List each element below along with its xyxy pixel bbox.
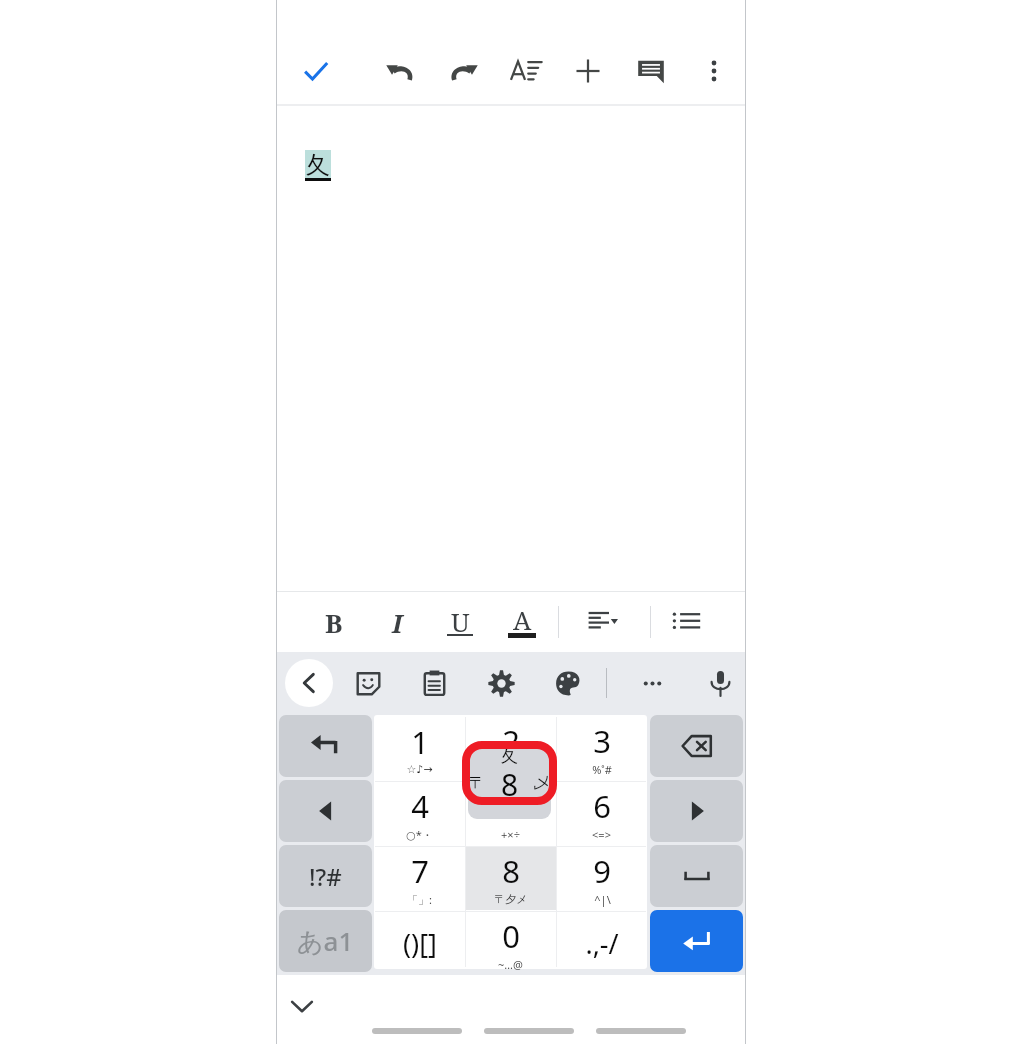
staticText: +×÷ <box>501 827 520 842</box>
staticText: 8 <box>502 850 520 892</box>
staticText: 8 <box>501 764 519 802</box>
button[interactable]: Cursor left <box>279 780 372 842</box>
button[interactable]: 9 <box>556 846 647 910</box>
staticText: <=> <box>592 827 611 842</box>
staticText: 〒 <box>469 773 485 793</box>
button[interactable]: Clipboard <box>411 660 457 706</box>
button[interactable]: U <box>436 597 484 645</box>
staticText: 6 <box>593 785 611 827</box>
button[interactable]: 3 <box>556 716 647 780</box>
button[interactable]: Stickers <box>345 660 391 706</box>
staticText: ☆♪→ <box>406 763 433 776</box>
staticText: I <box>392 605 403 640</box>
button[interactable]: Undo <box>377 47 425 95</box>
button[interactable]: 1 <box>374 716 465 780</box>
button[interactable]: Settings <box>478 660 524 706</box>
staticText: 乄 <box>534 774 549 793</box>
button[interactable]: More options <box>690 47 738 95</box>
button[interactable]: Enter <box>650 910 743 972</box>
button[interactable]: More <box>629 660 675 706</box>
button[interactable]: .,-/ <box>556 911 647 975</box>
button[interactable]: Text formatting <box>502 47 550 95</box>
button[interactable]: 4 <box>374 781 465 845</box>
staticText: あa1 <box>297 923 354 959</box>
button[interactable]: ()[] <box>374 911 465 975</box>
button[interactable]: 5 <box>465 781 556 845</box>
button[interactable]: I <box>373 598 421 646</box>
staticText: 〒夕メ <box>494 892 528 906</box>
staticText: 夂 <box>501 746 518 767</box>
button[interactable]: 6 <box>556 781 647 845</box>
button[interactable]: Insert <box>564 47 612 95</box>
button[interactable]: 8 <box>465 846 556 910</box>
staticText: %˚# <box>592 762 612 777</box>
button[interactable]: B <box>310 598 358 646</box>
staticText: 2 <box>502 720 520 762</box>
staticText: ^|\ <box>594 892 611 907</box>
staticText: ○*・ <box>406 827 433 842</box>
staticText: ()[] <box>403 925 437 962</box>
staticText: 夂 <box>306 150 330 179</box>
staticText: U <box>451 604 470 639</box>
staticText: A <box>513 602 532 637</box>
staticText: 「」: <box>407 892 432 907</box>
button[interactable]: Redo <box>439 47 487 95</box>
staticText: かきく <box>494 762 528 776</box>
button[interactable]: Alignment <box>579 598 627 646</box>
button[interactable]: あa1 <box>279 910 372 972</box>
staticText: 4 <box>411 785 429 827</box>
staticText: 1 <box>411 721 429 763</box>
button[interactable]: Delete <box>650 715 743 777</box>
button[interactable]: Back <box>285 659 333 707</box>
button[interactable]: !?# <box>279 845 372 907</box>
button[interactable]: Space <box>650 845 743 907</box>
button[interactable]: Hide keyboard <box>279 983 325 1029</box>
staticText: 5 <box>502 785 520 827</box>
button[interactable]: Done <box>292 47 340 95</box>
button[interactable]: Voice input <box>697 660 743 706</box>
button[interactable]: Theme <box>545 660 591 706</box>
staticText: 9 <box>593 850 611 892</box>
button[interactable]: A <box>498 595 546 643</box>
staticText: 7 <box>411 850 429 892</box>
button[interactable]: Bulleted list <box>663 598 711 646</box>
staticText: !?# <box>309 860 342 893</box>
staticText: B <box>325 605 343 640</box>
staticText: 3 <box>593 720 611 762</box>
button[interactable]: 7 <box>374 846 465 910</box>
button[interactable]: Undo <box>279 715 372 777</box>
staticText: .,-/ <box>585 925 619 962</box>
staticText: ~…@ <box>498 957 523 972</box>
button[interactable]: Comments <box>627 47 675 95</box>
staticText: 0 <box>502 915 520 957</box>
button[interactable]: Cursor right <box>650 780 743 842</box>
button[interactable]: 2 <box>465 716 556 780</box>
button[interactable]: 0 <box>465 911 556 975</box>
